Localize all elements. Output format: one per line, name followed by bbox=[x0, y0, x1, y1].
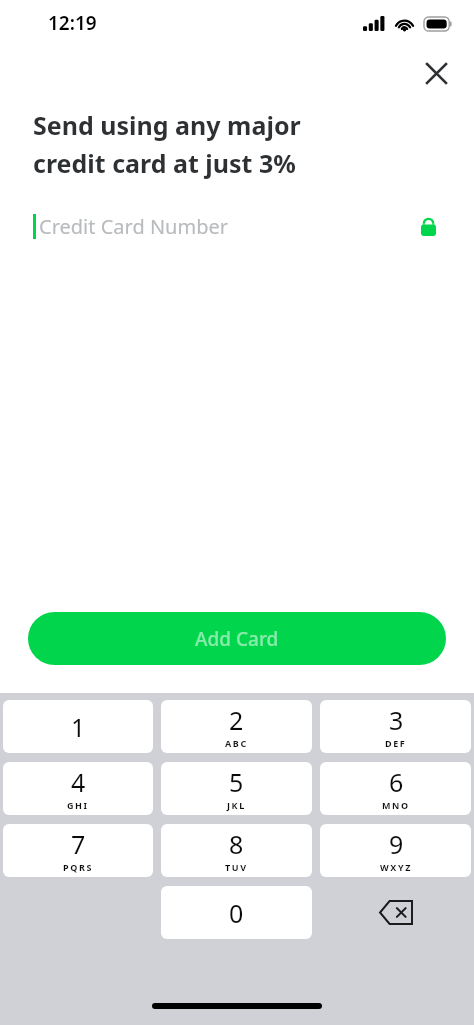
button[interactable]: 2 bbox=[161, 700, 312, 753]
button[interactable]: 7 bbox=[3, 824, 153, 877]
button[interactable]: 3 bbox=[320, 700, 471, 753]
button[interactable]: 5 bbox=[161, 762, 312, 815]
staticText: 3 bbox=[389, 703, 404, 737]
button[interactable]: 0 bbox=[161, 886, 312, 939]
staticText: WXYZ bbox=[380, 861, 412, 873]
button[interactable]: 9 bbox=[320, 824, 471, 877]
staticText: ABC bbox=[225, 737, 248, 749]
other: Secure bbox=[415, 213, 441, 239]
button[interactable]: Credit Card Number bbox=[0, 204, 474, 248]
button[interactable]: 1 bbox=[3, 700, 153, 753]
staticText: JKL bbox=[227, 799, 246, 811]
staticText: GHI bbox=[67, 799, 89, 811]
staticText: 7 bbox=[71, 827, 86, 861]
staticText: 12:19 bbox=[48, 10, 97, 36]
staticText: 5 bbox=[229, 765, 244, 799]
staticText: 8 bbox=[229, 827, 244, 861]
staticText: 1 bbox=[71, 710, 86, 744]
staticText: Credit Card Number bbox=[39, 213, 228, 240]
staticText: DEF bbox=[385, 737, 407, 749]
staticText: Send using any major bbox=[33, 108, 301, 142]
staticText: PQRS bbox=[63, 861, 93, 873]
button[interactable]: 6 bbox=[320, 762, 471, 815]
staticText: 9 bbox=[389, 827, 404, 861]
staticText: 4 bbox=[71, 765, 86, 799]
staticText: MNO bbox=[382, 799, 410, 811]
staticText: credit card at just 3% bbox=[33, 146, 296, 180]
staticText: 6 bbox=[389, 765, 404, 799]
staticText: 2 bbox=[229, 703, 244, 737]
button[interactable]: 4 bbox=[3, 762, 153, 815]
staticText: Add Card bbox=[195, 626, 279, 652]
button[interactable]: Add Card bbox=[28, 612, 446, 665]
button[interactable]: 8 bbox=[161, 824, 312, 877]
button[interactable]: Backspace bbox=[317, 886, 474, 939]
staticText: TUV bbox=[225, 861, 248, 873]
staticText: 0 bbox=[229, 896, 244, 930]
button[interactable]: Close bbox=[419, 56, 453, 90]
